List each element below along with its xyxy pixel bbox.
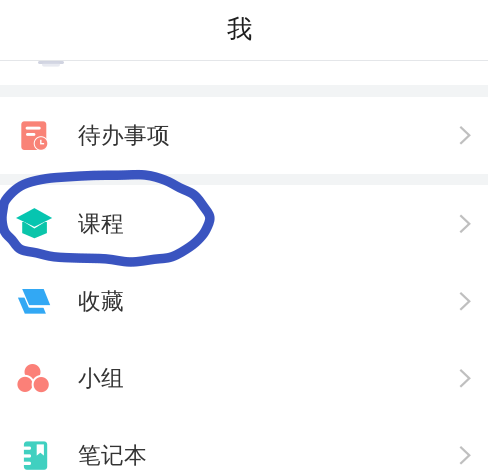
staticText: 待办事项 <box>78 122 170 149</box>
button[interactable]: 待办事项 <box>0 97 488 174</box>
button[interactable]: 收藏 <box>0 263 488 340</box>
button[interactable]: 课程 <box>0 185 488 263</box>
button[interactable]: 小组 <box>0 340 488 417</box>
staticText: 课程 <box>78 210 124 238</box>
button[interactable]: 笔记本 <box>0 417 488 475</box>
staticText: 笔记本 <box>78 442 147 469</box>
staticText: 我 <box>227 13 252 44</box>
staticText: 小组 <box>78 365 124 392</box>
staticText: 收藏 <box>78 288 124 315</box>
